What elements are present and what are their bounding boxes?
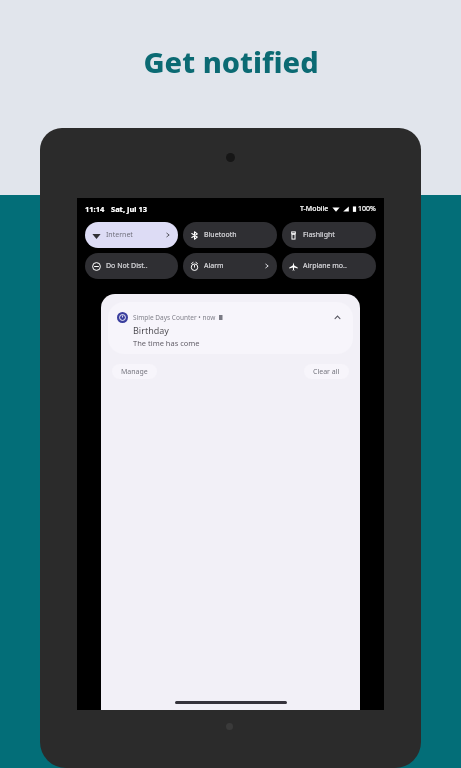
- staticText: Alarm: [204, 261, 224, 271]
- button[interactable]: Alarm: [183, 253, 277, 279]
- staticText: Bluetooth: [204, 230, 237, 240]
- button[interactable]: Bluetooth: [183, 222, 277, 248]
- staticText: Internet: [106, 230, 133, 240]
- staticText: 100%: [358, 204, 376, 214]
- staticText: T-Mobile: [300, 204, 329, 214]
- staticText: Clear all: [313, 367, 340, 377]
- staticText: Manage: [121, 367, 148, 377]
- button[interactable]: Manage: [112, 364, 157, 379]
- staticText: Simple Days Counter • now: [133, 313, 216, 322]
- button[interactable]: Airplane mo..: [282, 253, 376, 279]
- button[interactable]: Simple Days Counter • now: [108, 302, 353, 354]
- button[interactable]: Internet: [85, 222, 178, 248]
- button[interactable]: Clear all: [304, 364, 349, 379]
- staticText: 11:14: [85, 204, 105, 214]
- staticText: The time has come: [133, 338, 200, 348]
- staticText: Sat, Jul 13: [111, 204, 148, 214]
- button[interactable]: Do Not Dist..: [85, 253, 178, 279]
- button[interactable]: Collapse: [330, 310, 344, 324]
- staticText: Get notified: [143, 42, 319, 81]
- button[interactable]: Flashlight: [282, 222, 376, 248]
- staticText: Do Not Dist..: [106, 261, 148, 271]
- staticText: Flashlight: [303, 230, 335, 240]
- staticText: Birthday: [133, 324, 169, 336]
- staticText: Airplane mo..: [303, 261, 347, 271]
